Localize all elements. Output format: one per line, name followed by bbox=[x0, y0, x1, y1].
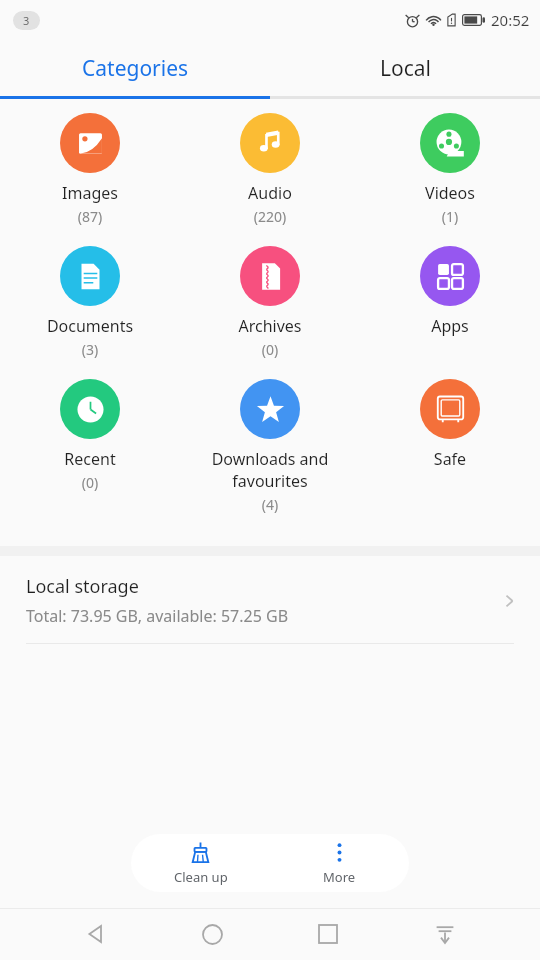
button[interactable]: Categories bbox=[0, 40, 270, 96]
staticText: Downloads and favourites bbox=[186, 448, 354, 492]
staticText: Documents bbox=[6, 315, 174, 337]
button[interactable]: Recent bbox=[0, 365, 180, 492]
staticText: (1) bbox=[366, 207, 534, 226]
staticText: (0) bbox=[6, 473, 174, 492]
staticText: Videos bbox=[366, 182, 534, 204]
button[interactable]: Videos bbox=[360, 99, 540, 226]
button[interactable]: Recent apps bbox=[305, 911, 351, 957]
button[interactable]: Local storage bbox=[0, 556, 540, 643]
button[interactable]: Local bbox=[270, 40, 540, 96]
staticText: (220) bbox=[186, 207, 354, 226]
staticText: (3) bbox=[6, 340, 174, 359]
button[interactable]: Hide navigation bar bbox=[422, 911, 468, 957]
staticText: Clean up bbox=[174, 868, 228, 886]
staticText: 20:52 bbox=[491, 10, 530, 30]
staticText: More bbox=[323, 868, 356, 886]
button[interactable]: Home bbox=[189, 911, 235, 957]
staticText: Audio bbox=[186, 182, 354, 204]
staticText: Images bbox=[6, 182, 174, 204]
button[interactable]: Downloads and favourites bbox=[180, 365, 360, 514]
staticText: 3 bbox=[23, 13, 30, 28]
staticText: (87) bbox=[6, 207, 174, 226]
button[interactable]: Documents bbox=[0, 232, 180, 359]
staticText: (4) bbox=[186, 495, 354, 514]
button[interactable]: Images bbox=[0, 99, 180, 226]
staticText: Total: 73.95 GB, available: 57.25 GB bbox=[26, 605, 289, 627]
button[interactable]: Safe bbox=[360, 365, 540, 470]
staticText: Safe bbox=[366, 448, 534, 470]
button[interactable]: Back bbox=[72, 911, 118, 957]
button[interactable]: Audio bbox=[180, 99, 360, 226]
staticText: Apps bbox=[366, 315, 534, 337]
staticText: (0) bbox=[186, 340, 354, 359]
button[interactable]: More bbox=[270, 834, 409, 892]
staticText: Recent bbox=[6, 448, 174, 470]
staticText: Archives bbox=[186, 315, 354, 337]
staticText: Local bbox=[380, 54, 431, 83]
button[interactable]: Archives bbox=[180, 232, 360, 359]
staticText: Local storage bbox=[26, 574, 139, 599]
button[interactable]: Clean up bbox=[131, 834, 270, 892]
button[interactable]: Apps bbox=[360, 232, 540, 337]
staticText: Categories bbox=[82, 54, 189, 83]
